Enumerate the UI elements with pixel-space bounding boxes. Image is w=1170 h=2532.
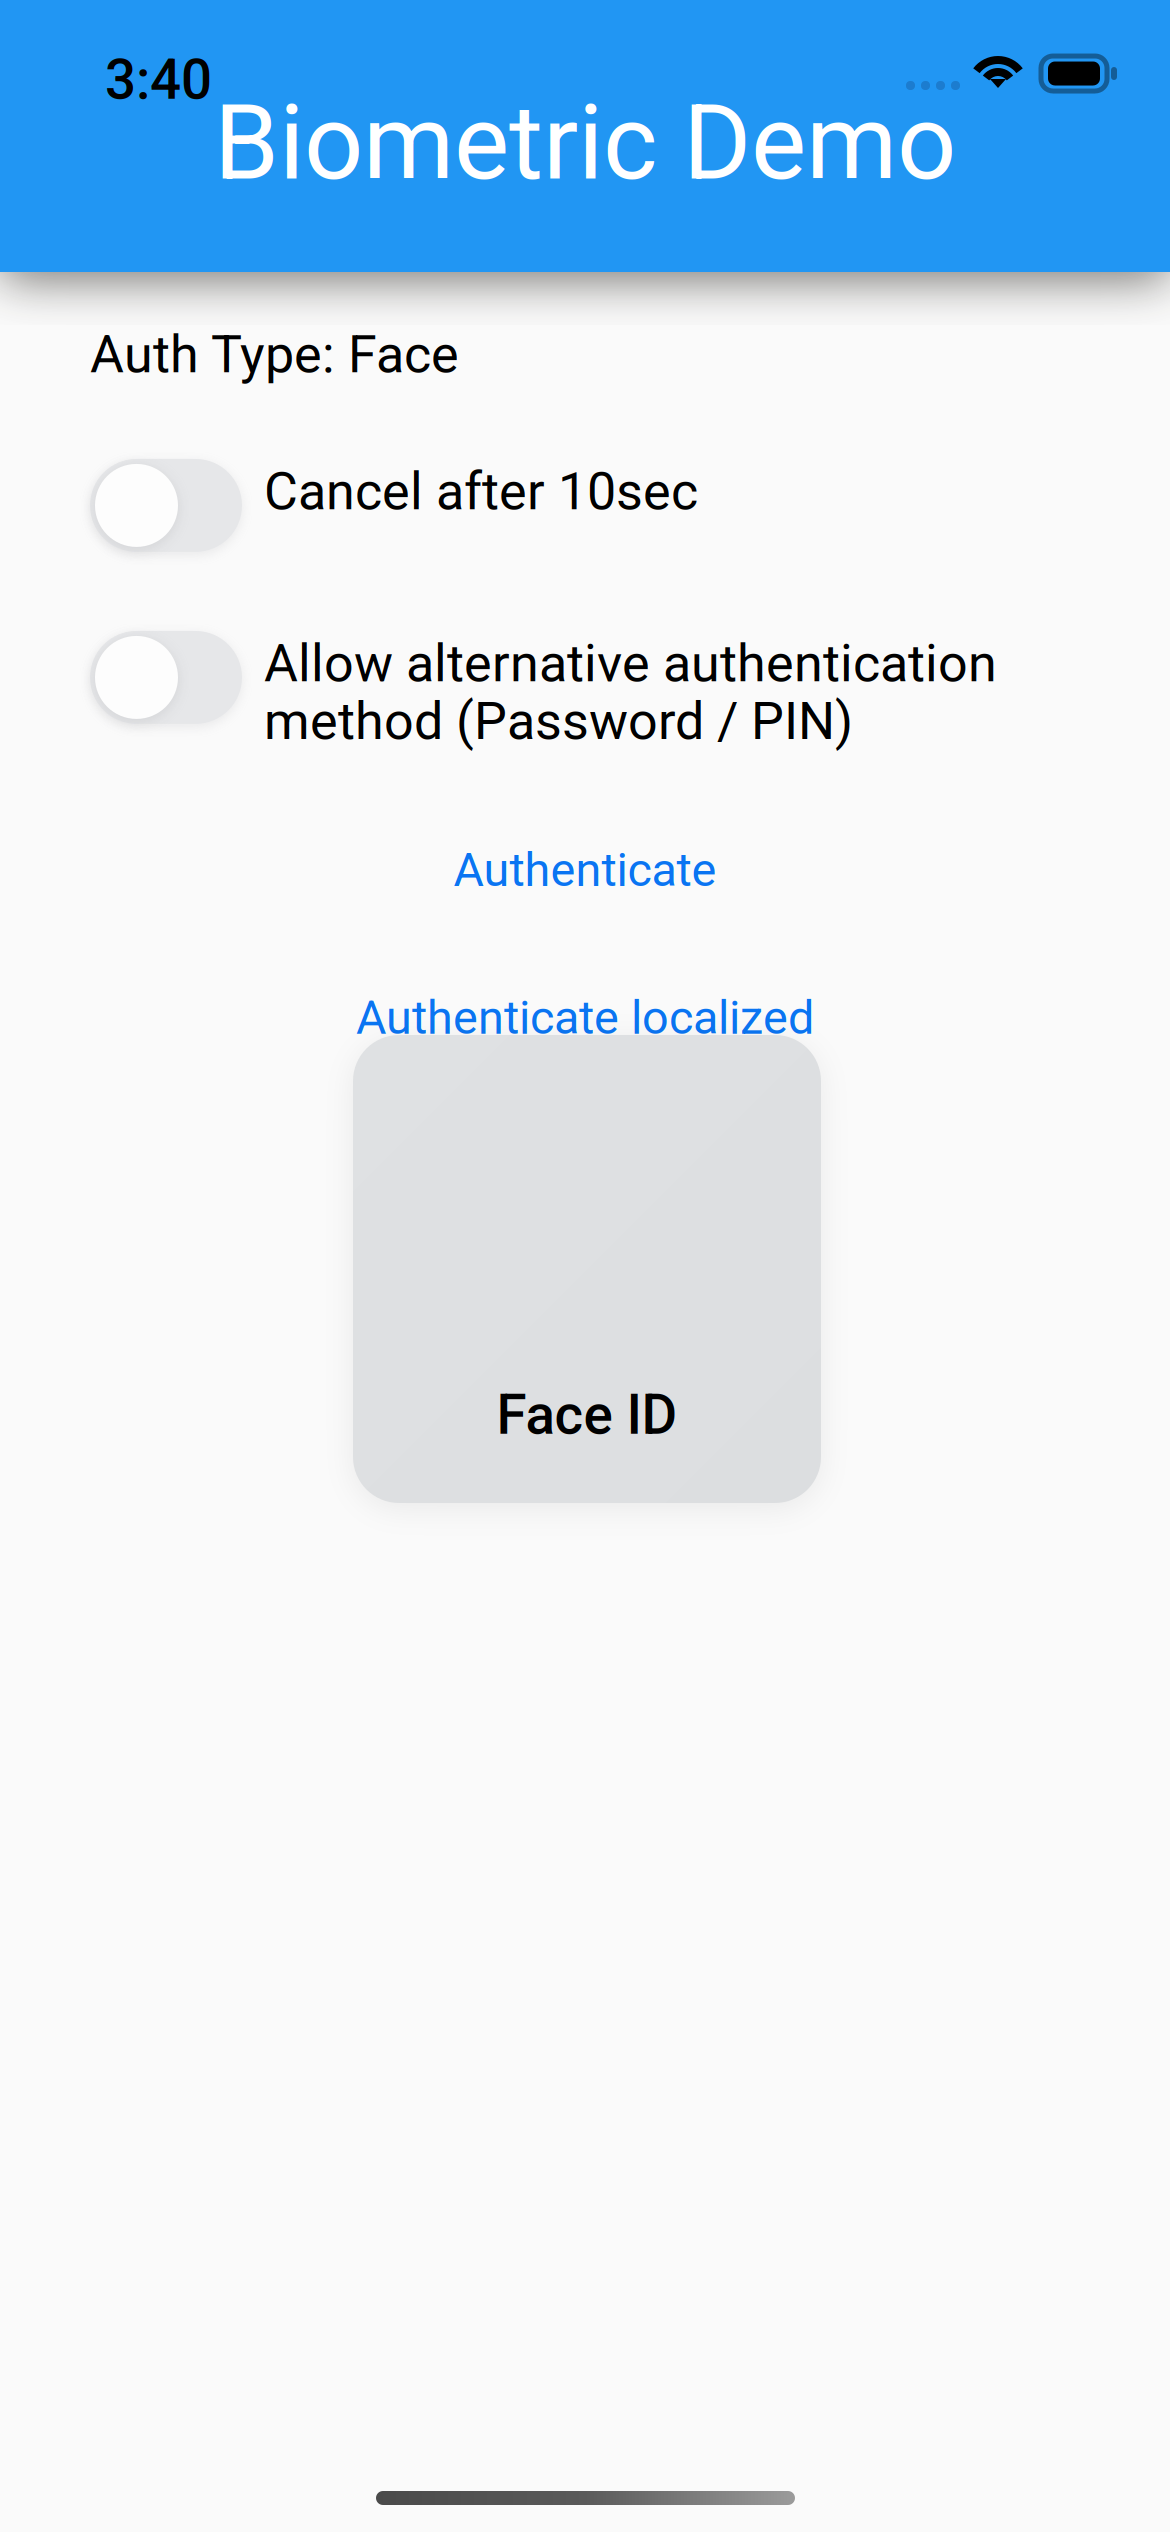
staticText: Auth Type: Face bbox=[90, 324, 459, 385]
staticText: Allow alternative authentication bbox=[264, 633, 997, 694]
staticText: Authenticate localized bbox=[356, 990, 814, 1045]
staticText: method (Password / PIN) bbox=[264, 691, 853, 752]
button[interactable]: Cancel after 10sec bbox=[90, 459, 1170, 552]
staticText: Authenticate bbox=[453, 843, 716, 897]
staticText: Biometric Demo bbox=[214, 82, 956, 204]
staticText: Face ID bbox=[496, 1383, 677, 1447]
staticText: 3:40 bbox=[105, 48, 212, 112]
button[interactable]: Allow alternative authentication bbox=[90, 631, 1170, 752]
staticText: Cancel after 10sec bbox=[264, 461, 698, 522]
button[interactable]: Authenticate localized bbox=[0, 970, 1170, 1065]
button[interactable]: Authenticate bbox=[0, 823, 1170, 917]
